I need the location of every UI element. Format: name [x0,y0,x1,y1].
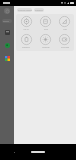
button[interactable]: Control panel [17,8,32,12]
staticText: Battery [22,46,30,49]
button[interactable]: SIM [36,16,55,31]
button[interactable]: Battery [16,34,36,49]
button[interactable]: Search [2,19,12,23]
button[interactable]: Display [36,34,55,49]
button[interactable]: Storage [55,34,74,49]
staticText: Control panel [18,9,32,12]
button[interactable]: Green app [4,42,10,48]
staticText: Wi-Fi [23,28,29,31]
button[interactable]: App [4,29,10,35]
staticText: Net [63,28,67,31]
button[interactable]: Devices [34,8,44,12]
staticText: SIM [44,28,48,31]
button[interactable]: Wi-Fi [16,16,36,31]
staticText: Storage [61,46,69,49]
staticText: Devices [35,9,43,12]
button[interactable]: Profile [4,8,10,14]
button[interactable]: Net [55,16,74,31]
staticText: Display [42,46,50,49]
button[interactable]: Multi app [4,55,10,61]
